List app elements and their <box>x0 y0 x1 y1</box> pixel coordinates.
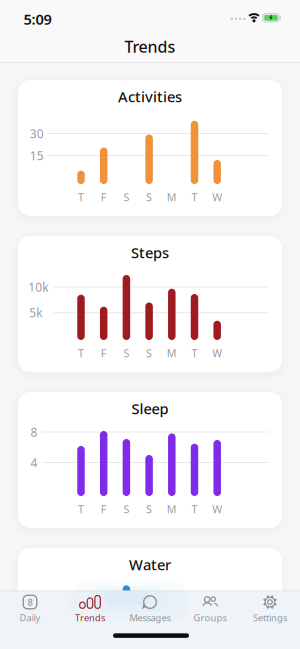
button[interactable]: Settings <box>240 592 300 626</box>
staticText: T <box>78 190 84 204</box>
staticText: T <box>191 346 197 360</box>
staticText: Trends <box>75 612 105 624</box>
button[interactable]: Messages <box>120 592 180 626</box>
staticText: S <box>123 346 129 360</box>
staticText: 8 <box>30 424 37 440</box>
staticText: 10k <box>28 279 48 295</box>
staticText: F <box>101 190 107 204</box>
staticText: S <box>123 190 129 204</box>
staticText: M <box>167 502 177 516</box>
button[interactable]: Groups <box>180 592 240 626</box>
staticText: T <box>78 346 84 360</box>
staticText: F <box>101 346 107 360</box>
staticText: T <box>191 190 197 204</box>
staticText: Settings <box>253 612 287 624</box>
staticText: 30 <box>30 125 44 141</box>
staticText: 5:09 <box>23 9 51 29</box>
staticText: Messages <box>129 612 170 624</box>
staticText: 4 <box>30 615 37 631</box>
staticText: Water <box>129 555 171 574</box>
staticText: Trends <box>124 36 175 57</box>
staticText: 5k <box>29 305 42 321</box>
button[interactable]: Trends <box>60 592 120 626</box>
staticText: M <box>167 190 177 204</box>
staticText: Activities <box>118 87 182 106</box>
staticText: S <box>123 502 129 516</box>
button[interactable]: 8 <box>0 592 60 626</box>
staticText: F <box>101 502 107 516</box>
staticText: Sleep <box>131 399 168 418</box>
staticText: T <box>191 502 197 516</box>
staticText: W <box>212 346 222 360</box>
staticText: 15 <box>30 147 44 163</box>
staticText: S <box>146 502 152 516</box>
staticText: Groups <box>193 612 226 624</box>
staticText: 4 <box>30 454 37 470</box>
staticText: W <box>212 502 222 516</box>
staticText: T <box>78 502 84 516</box>
staticText: W <box>212 190 222 204</box>
staticText: S <box>146 346 152 360</box>
staticText: Daily <box>19 612 40 624</box>
staticText: 8 <box>27 596 32 608</box>
staticText: S <box>146 190 152 204</box>
staticText: 8 <box>30 593 37 609</box>
staticText: Steps <box>131 243 169 262</box>
staticText: M <box>167 346 177 360</box>
